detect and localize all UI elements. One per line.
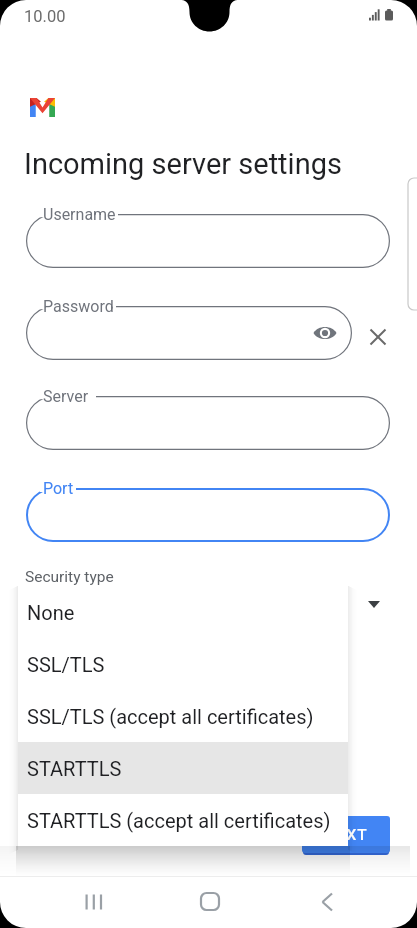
staticText: NEXT	[325, 826, 368, 844]
staticText: Port	[43, 479, 74, 498]
staticText: Incoming server settings	[24, 147, 342, 181]
staticText: SSL/TLS (accept all certificates)	[27, 705, 314, 728]
button[interactable]: STARTTLS	[18, 742, 348, 794]
button[interactable]: NEXT	[302, 816, 390, 853]
button[interactable]: Server	[26, 396, 390, 450]
button[interactable]: SSL/TLS (accept all certificates)	[18, 690, 348, 742]
staticText: None	[27, 601, 75, 624]
button[interactable]: Back	[305, 880, 349, 924]
staticText: Security type	[25, 568, 114, 586]
button[interactable]: Port	[26, 488, 390, 542]
button[interactable]: STARTTLS (accept all certificates)	[18, 794, 348, 846]
staticText: STARTTLS (accept all certificates)	[27, 809, 331, 832]
button[interactable]: Clear	[359, 318, 397, 356]
staticText: 10.00	[24, 7, 66, 26]
button[interactable]: Show password	[312, 320, 338, 346]
button[interactable]: None	[18, 586, 348, 638]
staticText: SSL/TLS	[27, 653, 105, 676]
button[interactable]: Recents	[72, 880, 116, 924]
staticText: Username	[43, 205, 116, 224]
button[interactable]: Home	[188, 880, 232, 924]
staticText: STARTTLS	[27, 757, 122, 780]
button[interactable]: Username	[26, 214, 390, 268]
staticText: Server	[43, 387, 89, 406]
staticText: Password	[43, 297, 114, 316]
button[interactable]: SSL/TLS	[18, 638, 348, 690]
button[interactable]: Open dropdown	[362, 594, 386, 618]
button[interactable]: Password	[26, 306, 352, 360]
